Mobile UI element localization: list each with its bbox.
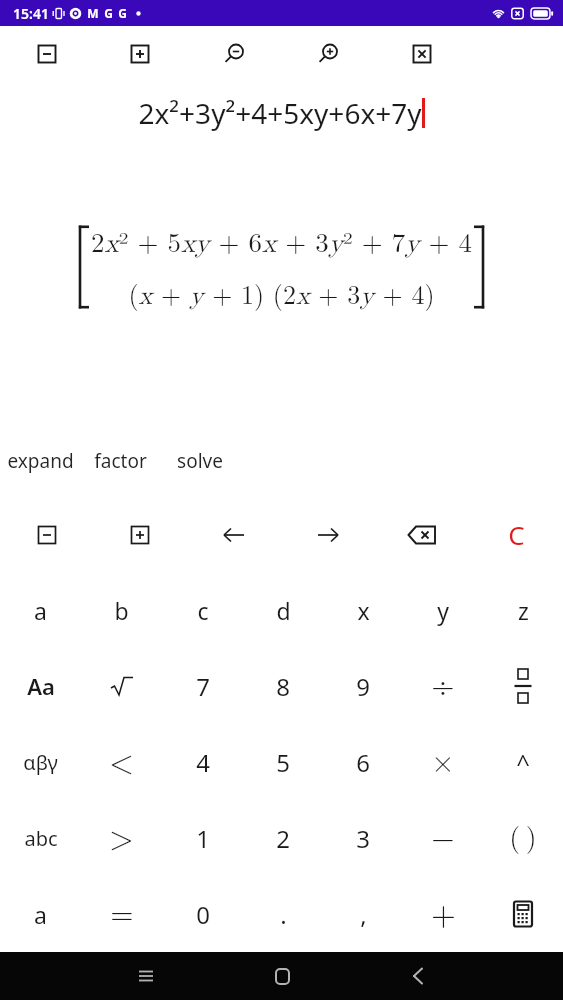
staticText: 8 (276, 670, 290, 703)
button[interactable]: 6 (323, 724, 403, 800)
button[interactable]: expand (0, 437, 80, 485)
button[interactable]: z (483, 572, 563, 648)
button[interactable] (187, 497, 281, 572)
staticText: 9 (356, 670, 370, 703)
staticText: − (431, 814, 455, 857)
button[interactable] (483, 876, 563, 952)
button[interactable]: C (469, 497, 563, 572)
button[interactable]: = (81, 876, 162, 952)
button[interactable]: 4 (162, 724, 243, 800)
staticText: abc (24, 825, 58, 852)
staticText: 3 (356, 822, 370, 855)
staticText: d (276, 595, 291, 626)
staticText: = (110, 890, 134, 933)
button[interactable] (81, 648, 162, 724)
button[interactable] (0, 26, 93, 82)
staticText: 2x² + 5xy + 6x + 3y² + 7y + 4 (91, 222, 472, 260)
button[interactable]: × (403, 724, 483, 800)
button[interactable]: , (323, 876, 403, 952)
button[interactable]: ÷ (403, 648, 483, 724)
button[interactable]: abc (0, 800, 81, 876)
staticText: c (197, 595, 209, 626)
button[interactable]: + (403, 876, 483, 952)
button[interactable]: . (243, 876, 323, 952)
staticText: < (109, 737, 134, 782)
staticText: solve (177, 448, 223, 474)
button[interactable] (350, 952, 486, 1000)
staticText: a (34, 899, 47, 930)
staticText: C (508, 517, 525, 552)
button[interactable]: x (323, 572, 403, 648)
staticText: > (109, 813, 134, 858)
button[interactable]: < (81, 724, 162, 800)
staticText: G (118, 5, 127, 21)
button[interactable] (281, 497, 375, 572)
staticText: . (280, 898, 287, 931)
button[interactable]: 7 (162, 648, 243, 724)
staticText: b (114, 595, 129, 626)
button[interactable]: 8 (243, 648, 323, 724)
staticText: αβγ (23, 749, 58, 776)
button[interactable] (281, 26, 375, 82)
staticText: 0 (196, 898, 210, 931)
button[interactable]: y (403, 572, 483, 648)
staticText: 15:41 (13, 4, 49, 23)
staticText: , (360, 898, 367, 931)
staticText: y (437, 595, 449, 626)
button[interactable]: 0 (162, 876, 243, 952)
button[interactable]: d (243, 572, 323, 648)
staticText: factor (94, 448, 147, 474)
staticText: (x + y + 1) (2x + 3y + 4) (128, 275, 435, 312)
button[interactable] (93, 26, 187, 82)
button[interactable]: a (0, 876, 81, 952)
staticText: 2 (276, 822, 290, 855)
button[interactable] (483, 648, 563, 724)
button[interactable]: ^ (483, 724, 563, 800)
staticText: expand (7, 448, 74, 474)
button[interactable]: − (403, 800, 483, 876)
button[interactable] (187, 26, 281, 82)
button[interactable] (214, 952, 350, 1000)
staticText: ^ (516, 746, 530, 779)
staticText: 5 (276, 746, 290, 779)
staticText: 6 (356, 746, 370, 779)
button[interactable]: factor (80, 437, 160, 485)
staticText: M (87, 5, 99, 21)
button[interactable]: αβγ (0, 724, 81, 800)
button[interactable]: b (81, 572, 162, 648)
staticText: 1 (196, 822, 210, 855)
button[interactable]: solve (160, 437, 240, 485)
button[interactable]: Aa (0, 648, 81, 724)
button[interactable] (375, 26, 469, 82)
button[interactable]: 9 (323, 648, 403, 724)
button[interactable]: ( ) (483, 800, 563, 876)
button[interactable]: a (0, 572, 81, 648)
staticText: ÷ (431, 662, 455, 705)
button[interactable]: 1 (162, 800, 243, 876)
button[interactable]: c (162, 572, 243, 648)
button[interactable] (93, 497, 187, 572)
staticText: z (518, 595, 529, 626)
staticText: 7 (196, 670, 210, 703)
staticText: G (104, 5, 113, 21)
staticText: a (34, 595, 47, 626)
button[interactable]: 2 (243, 800, 323, 876)
button[interactable]: 3 (323, 800, 403, 876)
staticText: Aa (27, 671, 55, 701)
staticText: x (357, 595, 370, 626)
staticText: 2x²+3y²+4+5xy+6x+7y (138, 94, 422, 132)
button[interactable] (0, 497, 93, 572)
button[interactable]: 5 (243, 724, 323, 800)
staticText: × (431, 738, 455, 781)
staticText: + (431, 889, 456, 934)
button[interactable] (77, 952, 214, 1000)
staticText: 4 (196, 746, 210, 779)
button[interactable] (375, 497, 469, 572)
button[interactable]: > (81, 800, 162, 876)
staticText: ( ) (509, 815, 537, 855)
